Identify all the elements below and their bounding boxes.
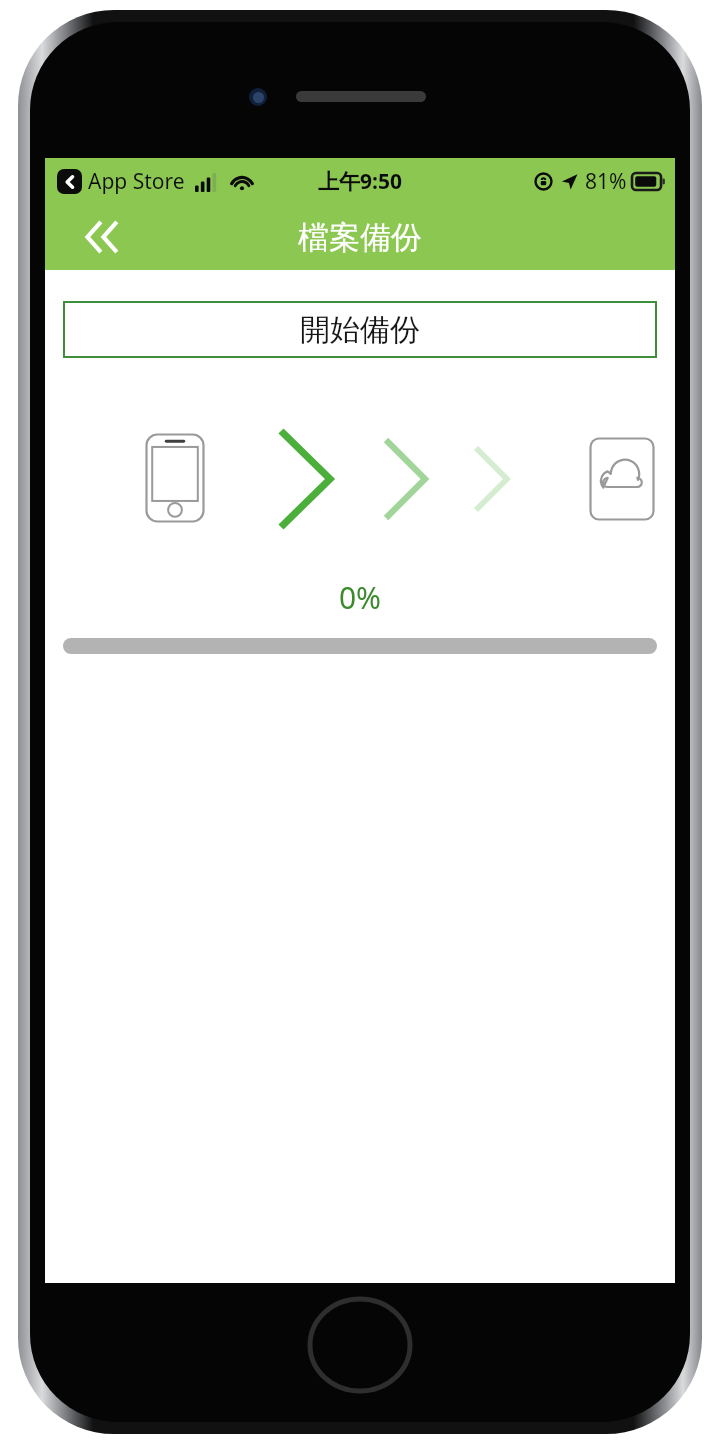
button[interactable]: App Store	[55, 167, 256, 196]
button[interactable]: 開始備份	[63, 301, 657, 358]
staticText: 上午9:50	[318, 167, 402, 196]
button[interactable]: Back	[69, 208, 131, 266]
staticText: 開始備份	[300, 311, 420, 349]
staticText: 81%	[585, 167, 627, 196]
staticText: 0%	[45, 577, 675, 618]
staticText: 檔案備份	[298, 218, 422, 257]
staticText: App Store	[88, 167, 185, 196]
